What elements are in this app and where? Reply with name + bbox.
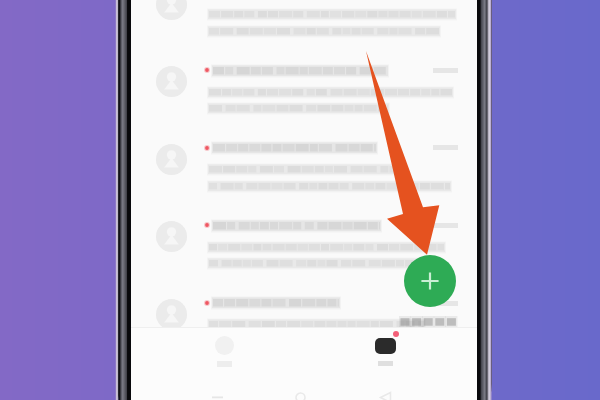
button[interactable]: Back xyxy=(376,388,394,400)
button[interactable]: Conversation xyxy=(131,44,477,121)
button[interactable]: Home xyxy=(291,388,309,400)
button[interactable]: Contacts tab xyxy=(186,329,262,373)
button[interactable]: Conversation xyxy=(131,122,477,199)
button[interactable]: Messages tab xyxy=(347,329,423,373)
button[interactable]: Conversation xyxy=(131,0,477,44)
button[interactable]: Compose new message xyxy=(404,255,456,307)
button[interactable]: Conversation xyxy=(131,199,477,276)
button[interactable]: Recent apps xyxy=(208,388,226,400)
button[interactable]: Conversation xyxy=(131,277,477,354)
